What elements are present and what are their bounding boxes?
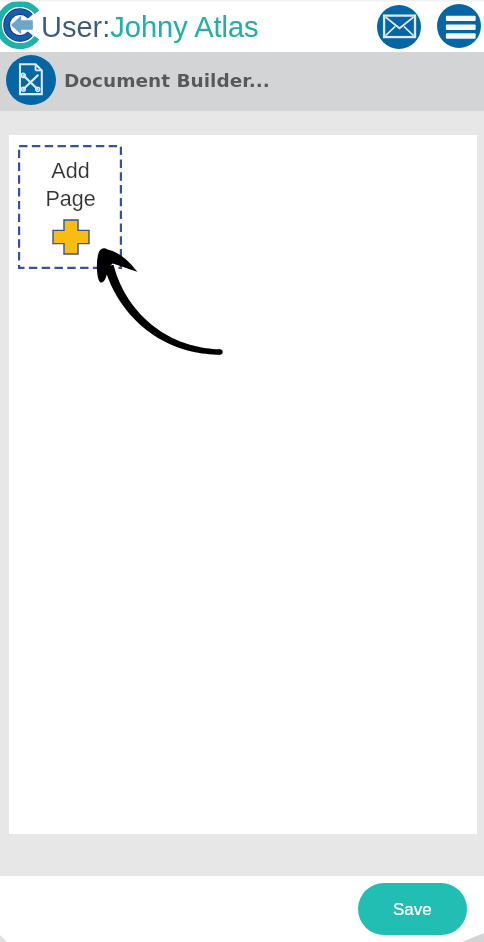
button[interactable]: Document builder [6,55,56,105]
button[interactable]: Back [0,0,45,50]
button[interactable]: Save [358,883,467,935]
staticText: User:Johny Atlas [41,11,259,43]
button[interactable]: Menu [437,4,481,48]
button[interactable]: Messages [377,5,421,49]
staticText: Save [393,900,432,919]
staticText: Add Page [45,159,96,210]
button[interactable]: Add Page [18,145,122,269]
staticText: Document Builder... [64,70,270,92]
